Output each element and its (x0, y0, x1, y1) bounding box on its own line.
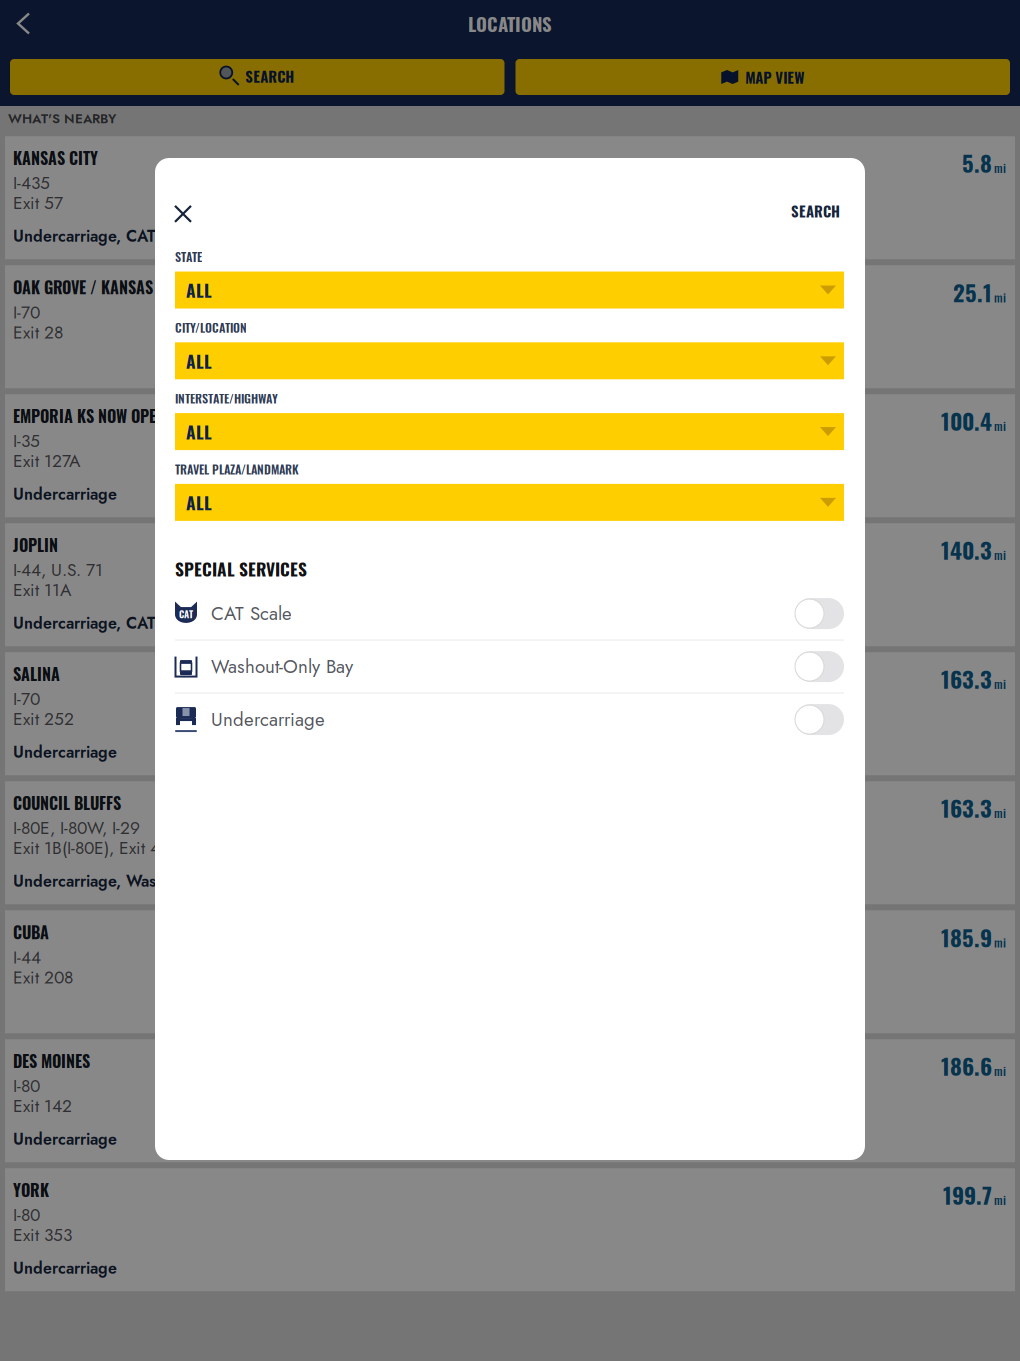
staticText: Exit 142 (13, 1094, 72, 1119)
staticText: Undercarriage, Washout (13, 870, 188, 893)
staticText: ALL (186, 419, 212, 444)
staticText: Exit 28 (13, 320, 63, 345)
button[interactable]: ALL (175, 413, 844, 450)
staticText: Undercarriage (211, 706, 325, 733)
staticText: mi (994, 804, 1006, 821)
staticText: 186.6 (941, 1049, 992, 1082)
staticText: COUNCIL BLUFFS (13, 791, 121, 814)
button[interactable]: Close (164, 196, 202, 232)
staticText: I-35 (13, 428, 40, 453)
staticText: 100.4 (941, 404, 992, 437)
staticText: DES MOINES (13, 1049, 90, 1072)
button[interactable]: Washout-Only Bay (175, 641, 844, 693)
staticText: Undercarriage, CAT Scale (13, 612, 199, 635)
button[interactable]: COUNCIL BLUFFS (5, 781, 1015, 904)
staticText: I-80E, I-80W, I-29 (13, 815, 140, 840)
button[interactable]: Back (0, 0, 47, 47)
staticText: Exit 127A (13, 449, 80, 474)
button[interactable]: ALL (175, 271, 844, 308)
staticText: 5.8 (962, 146, 992, 179)
staticText: CAT (179, 607, 193, 621)
staticText: YORK (13, 1178, 49, 1201)
staticText: Undercarriage (13, 483, 117, 506)
staticText: TRAVEL PLAZA/LANDMARK (175, 460, 299, 478)
staticText: Washout-Only Bay (211, 653, 353, 680)
staticText: Exit 57 (13, 191, 63, 216)
staticText: SALINA (13, 662, 60, 685)
staticText: 185.9 (941, 920, 992, 954)
staticText: mi (994, 1062, 1006, 1079)
staticText: ALL (186, 489, 212, 515)
staticText: SEARCH (791, 200, 840, 222)
button[interactable]: JOPLIN (5, 523, 1015, 646)
staticText: 163.3 (941, 791, 992, 824)
staticText: ALL (186, 348, 212, 374)
button[interactable]: SEARCH (781, 193, 847, 235)
button[interactable]: SALINA (5, 652, 1015, 775)
staticText: WHAT'S NEARBY (8, 109, 116, 128)
staticText: mi (994, 546, 1006, 563)
staticText: CITY/LOCATION (175, 318, 247, 336)
staticText: MAP VIEW (745, 66, 804, 88)
button[interactable]: ALL (175, 342, 844, 379)
staticText: mi (994, 159, 1006, 176)
staticText: mi (994, 288, 1006, 306)
button[interactable]: SEARCH (10, 59, 504, 95)
button[interactable]: YORK (5, 1168, 1015, 1291)
button[interactable]: EMPORIA KS NOW OPEN (5, 394, 1015, 517)
staticText: I-44, U.S. 71 (13, 557, 103, 582)
staticText: CUBA (13, 920, 49, 944)
staticText: 163.3 (941, 662, 992, 695)
button[interactable]: KANSAS CITY (5, 136, 1015, 259)
staticText: I-80 (13, 1202, 40, 1227)
staticText: Undercarriage (13, 741, 117, 764)
staticText: Undercarriage (13, 1128, 117, 1151)
button[interactable]: Undercarriage (175, 694, 844, 746)
staticText: KANSAS CITY (13, 146, 98, 169)
staticText: STATE (175, 248, 202, 265)
staticText: Exit 1B(I-80E), Exit 4 (13, 836, 160, 861)
staticText: mi (994, 417, 1006, 434)
staticText: Exit 11A (13, 578, 71, 603)
staticText: 199.7 (943, 1178, 992, 1211)
staticText: INTERSTATE/HIGHWAY (175, 389, 278, 407)
staticText: Exit 252 (13, 707, 74, 732)
button[interactable]: CUBA (5, 910, 1015, 1033)
staticText: I-44 (13, 945, 41, 970)
staticText: JOPLIN (13, 533, 58, 556)
staticText: ALL (186, 277, 212, 303)
staticText: Exit 353 (13, 1223, 72, 1248)
button[interactable]: OAK GROVE / KANSAS CITY (5, 265, 1015, 388)
staticText: mi (994, 1191, 1006, 1208)
staticText: CAT Scale (211, 600, 292, 627)
staticText: I-435 (13, 170, 50, 195)
staticText: mi (994, 675, 1006, 692)
staticText: SPECIAL SERVICES (175, 556, 307, 582)
staticText: 25.1 (953, 275, 992, 309)
button[interactable]: MAP VIEW (515, 59, 1010, 95)
staticText: 140.3 (941, 533, 992, 566)
button[interactable]: DES MOINES (5, 1039, 1015, 1162)
staticText: I-80 (13, 1073, 40, 1098)
staticText: Undercarriage (13, 1257, 117, 1280)
staticText: I-70 (13, 686, 40, 711)
staticText: OAK GROVE / KANSAS CITY (13, 275, 186, 299)
button[interactable]: CAT (175, 588, 844, 640)
staticText: LOCATIONS (468, 10, 552, 37)
staticText: EMPORIA KS NOW OPEN (13, 404, 165, 427)
staticText: Undercarriage, CAT Scale (13, 225, 199, 248)
staticText: mi (994, 933, 1006, 951)
button[interactable]: ALL (175, 484, 844, 521)
staticText: I-70 (13, 300, 40, 325)
staticText: SEARCH (245, 65, 294, 87)
staticText: Exit 208 (13, 965, 73, 990)
